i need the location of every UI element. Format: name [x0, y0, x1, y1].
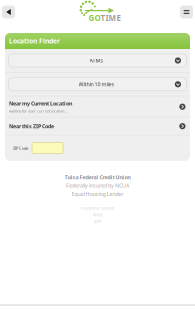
staticText: 07/29/2014 12:00:00 — [81, 205, 114, 211]
button[interactable]: Back — [2, 5, 15, 18]
button[interactable]: Menu — [180, 5, 193, 18]
staticText: Location Finder — [9, 37, 60, 45]
staticText: waiting for your current location ... — [9, 108, 68, 114]
staticText: ATMs — [89, 57, 103, 64]
staticText: Near my Current Location — [9, 100, 72, 107]
staticText: Tulsa Federal Credit Union — [64, 174, 130, 181]
staticText: Federally insured by NCUA — [66, 182, 129, 189]
staticText: Web2 — [92, 212, 102, 217]
staticText: Equal Housing Lender — [71, 190, 123, 197]
staticText: GO — [88, 13, 100, 23]
staticText: ZIP Code: — [13, 145, 29, 151]
button[interactable]: Location type: ATMs — [5, 49, 190, 72]
button[interactable]: ZIP Code entry field — [32, 143, 63, 154]
staticText: APP — [94, 219, 101, 224]
button[interactable]: Distance: Within 10 miles — [5, 73, 190, 96]
staticText: Near this ZIP Code — [9, 123, 54, 130]
staticText: Within 10 miles — [78, 81, 114, 88]
button[interactable]: Near this ZIP Code — [5, 118, 190, 135]
staticText: TIME — [100, 13, 120, 23]
button[interactable]: Near my Current Location — [5, 97, 190, 117]
